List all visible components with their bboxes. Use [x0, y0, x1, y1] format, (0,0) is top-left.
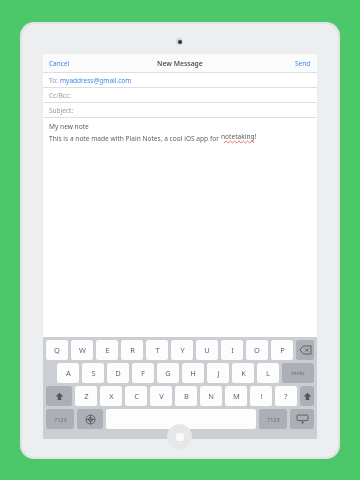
- button[interactable]: N: [200, 386, 222, 406]
- button[interactable]: J: [207, 363, 229, 383]
- staticText: X: [109, 391, 114, 401]
- button[interactable]: Hide keyboard: [290, 409, 314, 429]
- staticText: Cc/Bcc:: [49, 91, 71, 100]
- staticText: O: [254, 345, 260, 355]
- button[interactable]: ?: [275, 386, 297, 406]
- button[interactable]: R: [121, 340, 143, 360]
- button[interactable]: F: [132, 363, 154, 383]
- button[interactable]: E: [96, 340, 118, 360]
- button[interactable]: S: [82, 363, 104, 383]
- staticText: .?123: [266, 416, 280, 423]
- button[interactable]: A: [57, 363, 79, 383]
- staticText: Q: [54, 345, 60, 355]
- button[interactable]: P: [271, 340, 293, 360]
- button[interactable]: U: [196, 340, 218, 360]
- button[interactable]: .?123: [46, 409, 74, 429]
- button[interactable]: Cc/Bcc:: [43, 88, 317, 102]
- staticText: C: [134, 391, 139, 401]
- staticText: G: [165, 368, 171, 378]
- staticText: To:: [49, 76, 58, 85]
- button[interactable]: Y: [171, 340, 193, 360]
- button[interactable]: invio: [282, 363, 314, 383]
- staticText: notetaking!: [221, 132, 257, 141]
- button[interactable]: .?123: [259, 409, 287, 429]
- button[interactable]: G: [157, 363, 179, 383]
- staticText: N: [208, 391, 214, 401]
- staticText: A: [66, 368, 71, 378]
- staticText: J: [217, 368, 220, 378]
- staticText: R: [130, 345, 135, 355]
- staticText: Subject:: [49, 106, 74, 115]
- staticText: B: [184, 391, 189, 401]
- staticText: I: [231, 345, 234, 355]
- button[interactable]: Home: [167, 424, 192, 449]
- button[interactable]: O: [246, 340, 268, 360]
- staticText: Cancel: [49, 59, 70, 68]
- button[interactable]: !: [250, 386, 272, 406]
- staticText: Send: [295, 59, 311, 68]
- staticText: L: [266, 368, 270, 378]
- button[interactable]: V: [150, 386, 172, 406]
- staticText: M: [233, 391, 240, 401]
- staticText: U: [204, 345, 210, 355]
- button[interactable]: C: [125, 386, 147, 406]
- staticText: Z: [84, 391, 89, 401]
- staticText: invio: [291, 369, 305, 377]
- button[interactable]: M: [225, 386, 247, 406]
- button[interactable]: Shift: [46, 386, 72, 406]
- button[interactable]: X: [100, 386, 122, 406]
- staticText: W: [79, 345, 86, 355]
- staticText: F: [141, 368, 145, 378]
- staticText: D: [115, 368, 121, 378]
- staticText: S: [91, 368, 96, 378]
- button[interactable]: W: [71, 340, 93, 360]
- staticText: Y: [180, 345, 185, 355]
- button[interactable]: T: [146, 340, 168, 360]
- staticText: K: [241, 368, 246, 378]
- staticText: My new note: [49, 122, 89, 131]
- staticText: New Message: [157, 59, 203, 68]
- button[interactable]: Space: [106, 409, 256, 429]
- staticText: V: [159, 391, 164, 401]
- button[interactable]: Delete: [296, 340, 314, 360]
- button[interactable]: Q: [46, 340, 68, 360]
- staticText: ?: [284, 391, 288, 401]
- button[interactable]: L: [257, 363, 279, 383]
- staticText: E: [105, 345, 110, 355]
- button[interactable]: Change language: [77, 409, 103, 429]
- button[interactable]: Z: [75, 386, 97, 406]
- staticText: P: [280, 345, 285, 355]
- button[interactable]: K: [232, 363, 254, 383]
- button[interactable]: My new note: [43, 118, 317, 163]
- button[interactable]: Shift: [300, 386, 314, 406]
- button[interactable]: D: [107, 363, 129, 383]
- staticText: H: [190, 368, 196, 378]
- button[interactable]: To:: [43, 73, 317, 87]
- button[interactable]: Subject:: [43, 103, 317, 117]
- staticText: This is a note made with Plain Notes, a …: [49, 134, 221, 143]
- button[interactable]: B: [175, 386, 197, 406]
- button[interactable]: Cancel: [48, 57, 71, 70]
- staticText: T: [155, 345, 160, 355]
- button[interactable]: H: [182, 363, 204, 383]
- staticText: myaddress@gmail.com: [60, 76, 132, 85]
- button[interactable]: I: [221, 340, 243, 360]
- button[interactable]: Send: [294, 57, 312, 70]
- staticText: .?123: [53, 416, 67, 423]
- staticText: !: [260, 391, 263, 401]
